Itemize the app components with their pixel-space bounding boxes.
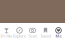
button[interactable]: Me (52, 28, 65, 38)
staticText: Me (55, 33, 61, 38)
staticText: Saved (40, 33, 50, 38)
button[interactable]: Saved (39, 28, 52, 38)
button[interactable]: Scan (26, 28, 39, 38)
staticText: Explore (13, 33, 26, 38)
button[interactable]: Explore (13, 28, 26, 38)
button[interactable]: Drinks (0, 28, 13, 38)
staticText: Scan (28, 33, 36, 38)
staticText: Drinks (0, 33, 12, 38)
